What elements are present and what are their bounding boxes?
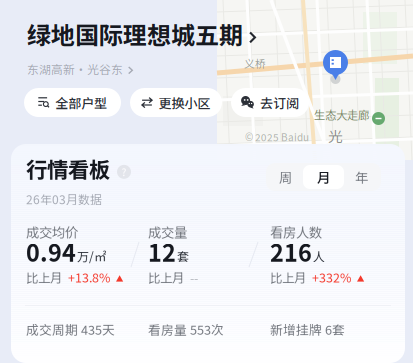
staticText: 光 xyxy=(328,127,343,144)
button[interactable]: 更换小区 xyxy=(130,88,222,117)
staticText: ? xyxy=(121,166,126,178)
staticText: 月 xyxy=(317,169,330,185)
button[interactable]: 全部户型 xyxy=(24,88,121,117)
staticText: 更换小区 xyxy=(158,95,210,110)
button[interactable]: 东湖高新·光谷东 xyxy=(27,62,133,76)
staticText: 万/㎡ xyxy=(77,249,106,263)
button[interactable]: 月 xyxy=(303,165,344,189)
staticText: 成交周期 435天 xyxy=(26,322,115,337)
staticText: 216 xyxy=(270,238,312,265)
staticText: 看房人数 xyxy=(270,224,322,239)
staticText: 比上月 xyxy=(148,270,184,284)
staticText: 比上月 xyxy=(26,270,62,284)
staticText: 12 xyxy=(148,238,176,265)
button[interactable]: 周 xyxy=(268,165,303,189)
staticText: 绿地国际理想城五期 xyxy=(27,20,243,48)
staticText: 义桥 xyxy=(244,57,266,69)
staticText: 比上月 xyxy=(270,270,306,284)
staticText: 东湖高新·光谷东 xyxy=(27,62,123,76)
staticText: 看房量 553次 xyxy=(148,322,224,337)
staticText: 生态大走廊 xyxy=(314,108,369,121)
staticText: 去订阅 xyxy=(260,95,299,110)
staticText: 套 xyxy=(177,249,189,263)
staticText: 全部户型 xyxy=(55,95,107,110)
staticText: 年 xyxy=(355,169,368,185)
staticText: 新增挂牌 6套 xyxy=(270,322,345,337)
staticText: 成交量 xyxy=(148,224,187,239)
staticText: -- xyxy=(190,270,198,284)
staticText: +13.8% xyxy=(68,270,110,284)
staticText: 26年03月数据 xyxy=(26,192,102,206)
staticText: 0.94 xyxy=(26,238,76,265)
staticText: +332% xyxy=(312,270,351,284)
staticText: 周 xyxy=(279,169,292,185)
staticText: 行情看板 xyxy=(26,156,110,181)
staticText: © 2025 Baidu xyxy=(245,131,309,143)
button[interactable]: 去订阅 xyxy=(231,88,309,117)
staticText: 人 xyxy=(313,249,325,263)
button[interactable]: 绿地国际理想城五期 xyxy=(27,20,256,48)
staticText: 成交均价 xyxy=(26,224,78,239)
button[interactable]: 年 xyxy=(344,165,379,189)
